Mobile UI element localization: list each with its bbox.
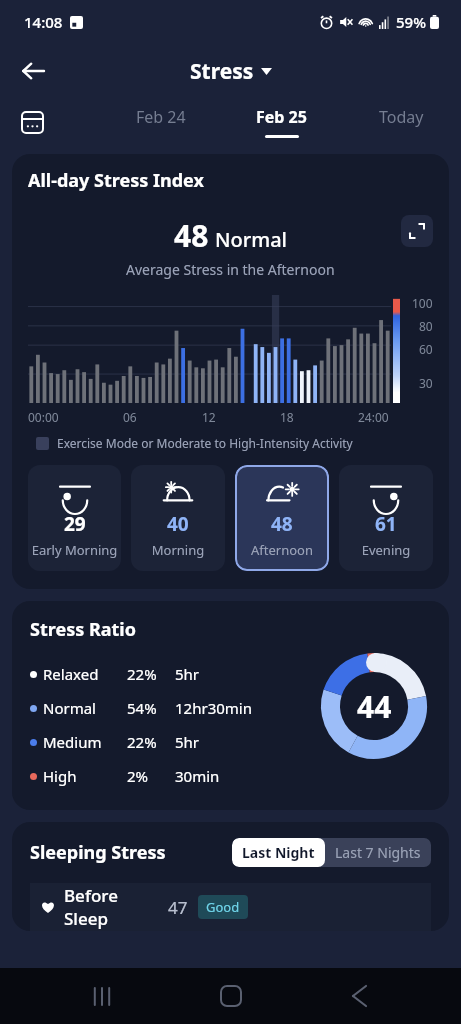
- staticText: Normal: [215, 226, 287, 253]
- staticText: Last 7 Nights: [335, 843, 421, 862]
- staticText: 00:00: [28, 409, 59, 425]
- staticText: Feb 25: [256, 106, 307, 128]
- button[interactable]: Feb 24: [101, 98, 221, 146]
- staticText: Stress: [190, 57, 254, 86]
- staticText: Medium: [43, 732, 102, 752]
- staticText: 12: [202, 409, 216, 425]
- staticText: Relaxed: [43, 664, 99, 684]
- button[interactable]: Expand: [401, 215, 433, 247]
- staticText: Before Sleep: [64, 884, 162, 930]
- staticText: 30: [419, 375, 433, 391]
- staticText: Morning: [131, 541, 225, 559]
- staticText: 47: [168, 896, 188, 919]
- staticText: 22%: [127, 732, 157, 752]
- staticText: Exercise Mode or Moderate to High-Intens…: [57, 435, 353, 451]
- button[interactable]: Last Night: [232, 838, 325, 867]
- staticText: 18: [280, 409, 294, 425]
- button[interactable]: 61: [339, 465, 433, 571]
- staticText: 24:00: [358, 409, 389, 425]
- button[interactable]: Today: [341, 98, 461, 146]
- staticText: All-day Stress Index: [28, 168, 204, 193]
- button[interactable]: Back: [333, 970, 385, 1022]
- staticText: High: [43, 766, 77, 786]
- staticText: Last Night: [242, 843, 315, 862]
- staticText: 44: [357, 686, 392, 727]
- staticText: Normal: [43, 698, 96, 718]
- button[interactable]: Recents: [76, 970, 128, 1022]
- staticText: Feb 24: [136, 106, 186, 128]
- staticText: 06: [123, 409, 137, 425]
- staticText: 48: [174, 215, 209, 256]
- button[interactable]: Feb 25: [221, 98, 341, 146]
- button[interactable]: Last 7 Nights: [325, 838, 431, 867]
- button[interactable]: Back: [10, 48, 56, 94]
- button[interactable]: All-day Stress Index: [12, 154, 449, 589]
- staticText: Average Stress in the Afternoon: [126, 260, 335, 279]
- button[interactable]: 29: [28, 465, 121, 571]
- staticText: 54%: [127, 698, 157, 718]
- button[interactable]: Calendar: [12, 102, 52, 142]
- staticText: 48: [271, 511, 293, 537]
- staticText: 59%: [396, 12, 426, 32]
- staticText: Good: [206, 898, 240, 916]
- staticText: 14:08: [24, 12, 63, 32]
- staticText: 2%: [127, 766, 149, 786]
- staticText: 5hr: [175, 732, 200, 752]
- staticText: Sleeping Stress: [30, 840, 166, 865]
- staticText: 12hr30min: [175, 698, 252, 718]
- button[interactable]: Sleeping Stress: [12, 822, 449, 931]
- button[interactable]: Stress: [184, 54, 278, 89]
- staticText: Stress Ratio: [30, 617, 136, 642]
- staticText: Today: [379, 106, 424, 128]
- staticText: 60: [419, 341, 433, 357]
- staticText: 100: [412, 295, 433, 311]
- staticText: Evening: [339, 541, 433, 559]
- staticText: Early Morning: [28, 541, 121, 559]
- staticText: 30min: [175, 766, 220, 786]
- staticText: Afternoon: [235, 541, 329, 559]
- staticText: 40: [167, 511, 189, 537]
- staticText: 22%: [127, 664, 157, 684]
- button[interactable]: 40: [131, 465, 225, 571]
- staticText: 5hr: [175, 664, 200, 684]
- staticText: 80: [419, 318, 433, 334]
- staticText: 29: [64, 511, 86, 537]
- button[interactable]: 48: [235, 465, 329, 571]
- staticText: 61: [375, 511, 397, 537]
- button[interactable]: Home: [205, 970, 257, 1022]
- button[interactable]: Stress Ratio: [12, 601, 449, 810]
